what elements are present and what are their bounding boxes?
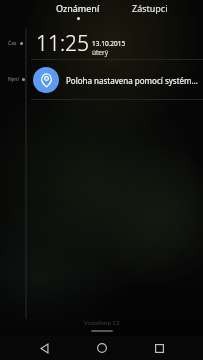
staticText: Čas: [8, 40, 17, 47]
staticText: 11:25: [36, 29, 90, 58]
other: Poloha: [33, 67, 59, 93]
staticText: 13.10.2015: [92, 39, 126, 48]
button[interactable]: Oznámení: [52, 0, 104, 22]
button[interactable]: Zpět: [30, 336, 58, 360]
button[interactable]: Domů: [88, 336, 116, 360]
staticText: Nyní: [8, 76, 19, 83]
button[interactable]: Zástupci: [128, 0, 172, 16]
staticText: Zástupci: [132, 2, 168, 14]
staticText: úterý: [92, 48, 109, 57]
button[interactable]: Čas: [0, 28, 203, 59]
button[interactable]: Přehled: [145, 336, 173, 360]
staticText: Poloha nastavena pomocí systému...: [66, 75, 199, 86]
staticText: Oznámení: [56, 2, 100, 14]
staticText: Vodafone CZ: [84, 319, 120, 327]
button[interactable]: Nyní: [0, 60, 203, 99]
